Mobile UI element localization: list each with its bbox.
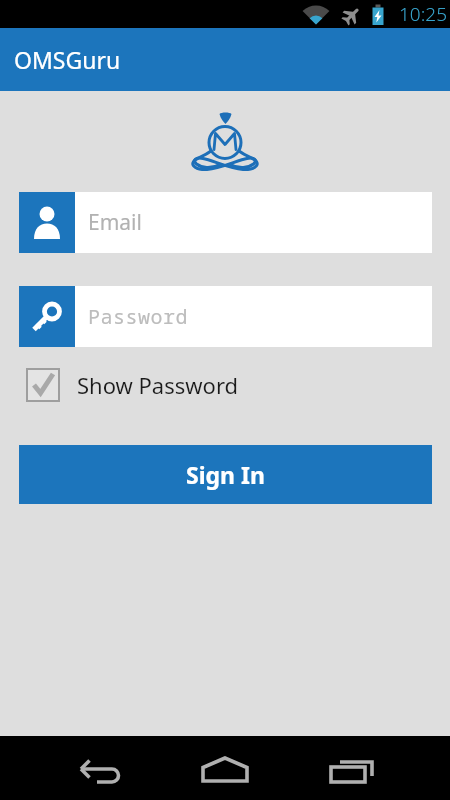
button[interactable]: Show Password [26,364,239,406]
button[interactable]: Sign In [19,445,432,504]
staticText: 10:25 [399,1,448,27]
staticText: Show Password [77,370,239,400]
staticText: Email [88,208,142,237]
button[interactable] [70,736,132,800]
staticText: Password [88,303,188,330]
button[interactable] [194,736,256,800]
button[interactable]: Email [19,192,432,253]
staticText: Sign In [186,459,265,490]
button[interactable] [317,736,379,800]
button[interactable]: Password [19,286,432,347]
staticText: OMSGuru [14,44,121,75]
